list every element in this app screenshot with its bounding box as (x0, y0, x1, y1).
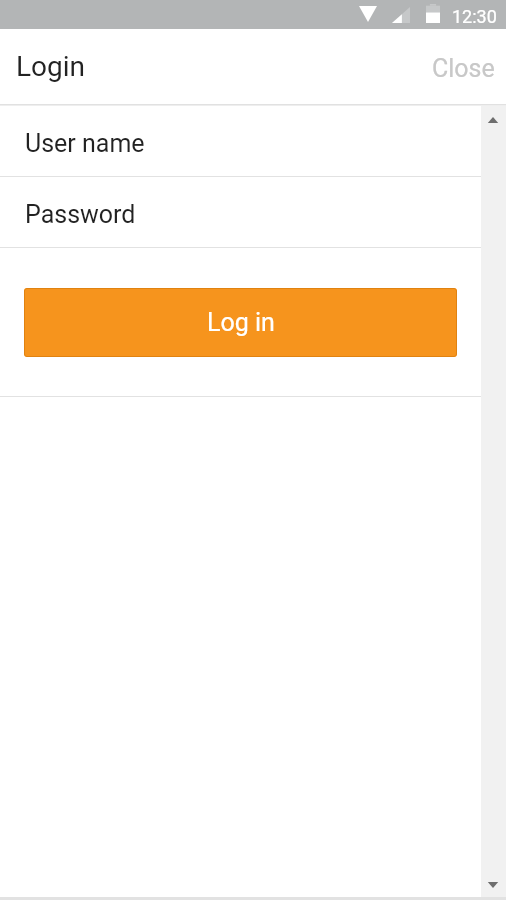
other: Scroll bar (481, 106, 506, 897)
other: Mobile signal (392, 7, 410, 23)
other: Battery (426, 4, 440, 23)
staticText: Log in (207, 308, 275, 337)
button[interactable]: Login (0, 36, 104, 97)
staticText: User name (25, 129, 145, 158)
button[interactable]: User name (0, 106, 481, 176)
button[interactable]: Log in (24, 288, 457, 357)
staticText: Close (432, 54, 495, 83)
button[interactable]: Password (0, 177, 481, 247)
staticText: 12:30 (452, 6, 497, 27)
other: Wi-Fi (359, 6, 377, 22)
staticText: Password (25, 200, 136, 229)
button[interactable]: Close (414, 38, 506, 95)
staticText: Login (16, 50, 86, 83)
